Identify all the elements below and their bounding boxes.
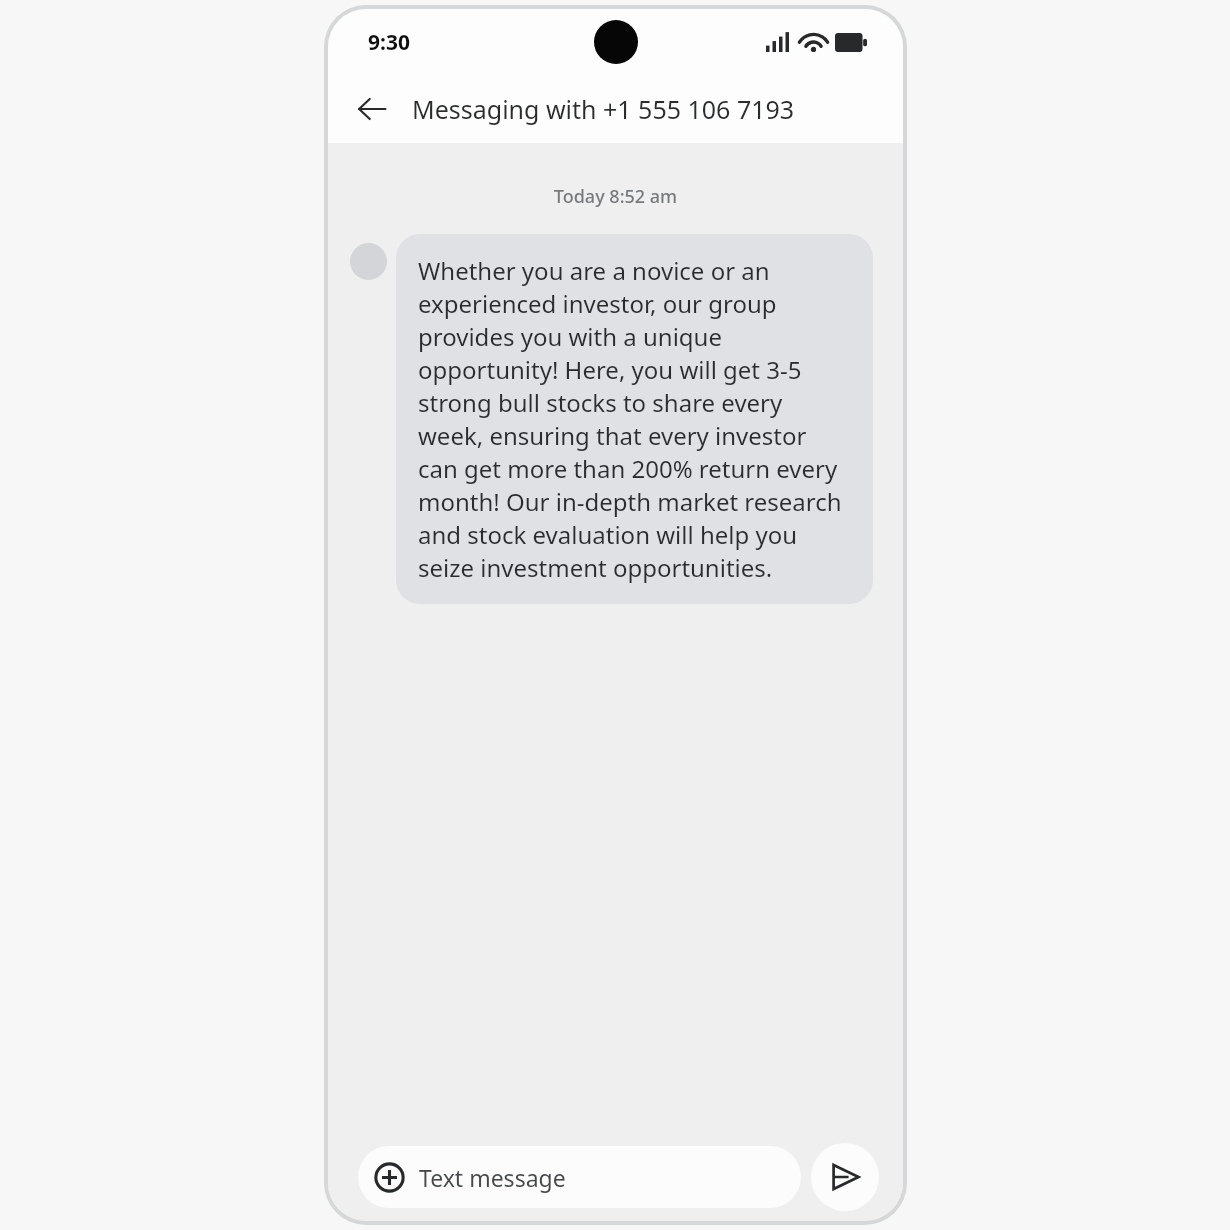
button[interactable]: Whether you are a novice or an experienc… <box>396 234 873 604</box>
button[interactable]: Back <box>346 83 398 135</box>
staticText: Today 8:52 am <box>328 184 903 209</box>
button[interactable]: Send <box>811 1143 879 1211</box>
staticText: Text message <box>419 1162 566 1193</box>
staticText: 9:30 <box>368 28 410 57</box>
staticText: Messaging with +1 555 106 7193 <box>412 92 795 126</box>
staticText: Whether you are a novice or an experienc… <box>418 254 851 584</box>
button[interactable]: Text message <box>358 1146 801 1208</box>
